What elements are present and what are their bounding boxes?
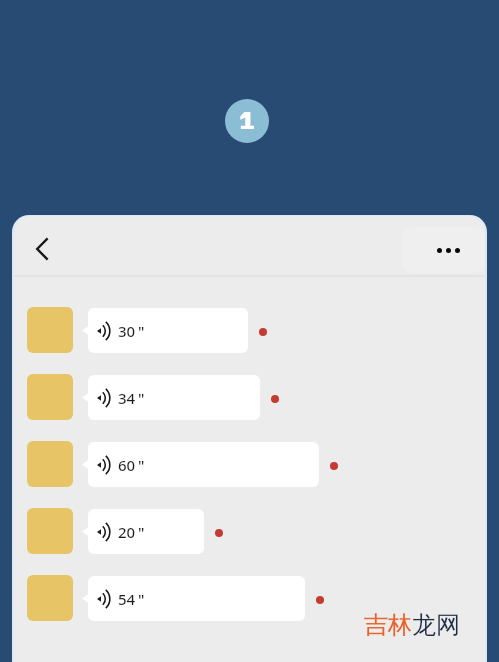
button[interactable]: Attachment thumbnail xyxy=(27,575,73,621)
button[interactable]: Step 1 xyxy=(225,99,269,143)
button[interactable]: 20 xyxy=(82,509,204,554)
staticText: 60 xyxy=(118,455,136,475)
button[interactable]: 34 xyxy=(82,375,260,420)
button[interactable]: Attachment thumbnail xyxy=(27,441,73,487)
button[interactable]: 54 xyxy=(82,576,305,621)
staticText: 20 xyxy=(118,522,136,542)
button[interactable]: Attachment thumbnail xyxy=(27,508,73,554)
button[interactable]: Attachment thumbnail xyxy=(27,307,267,353)
button[interactable]: Attachment thumbnail xyxy=(27,508,223,554)
button[interactable]: Attachment thumbnail xyxy=(27,307,73,353)
staticText: 34 xyxy=(118,388,136,408)
button[interactable]: Attachment thumbnail xyxy=(27,374,73,420)
staticText: " xyxy=(138,522,145,542)
staticText: 30 xyxy=(118,321,136,341)
button[interactable]: Back xyxy=(26,233,58,265)
button[interactable]: Attachment thumbnail xyxy=(27,374,279,420)
staticText: 龙网 xyxy=(412,610,460,640)
button[interactable]: More options xyxy=(402,227,485,273)
staticText: 54 xyxy=(118,589,136,609)
button[interactable]: 60 xyxy=(82,442,319,487)
staticText: " xyxy=(138,388,145,408)
button[interactable]: 30 xyxy=(82,308,248,353)
staticText: " xyxy=(138,455,145,475)
staticText: " xyxy=(138,321,145,341)
staticText: 吉林 xyxy=(364,610,412,640)
staticText: " xyxy=(138,589,145,609)
button[interactable]: Attachment thumbnail xyxy=(27,575,324,621)
button[interactable]: Attachment thumbnail xyxy=(27,441,338,487)
